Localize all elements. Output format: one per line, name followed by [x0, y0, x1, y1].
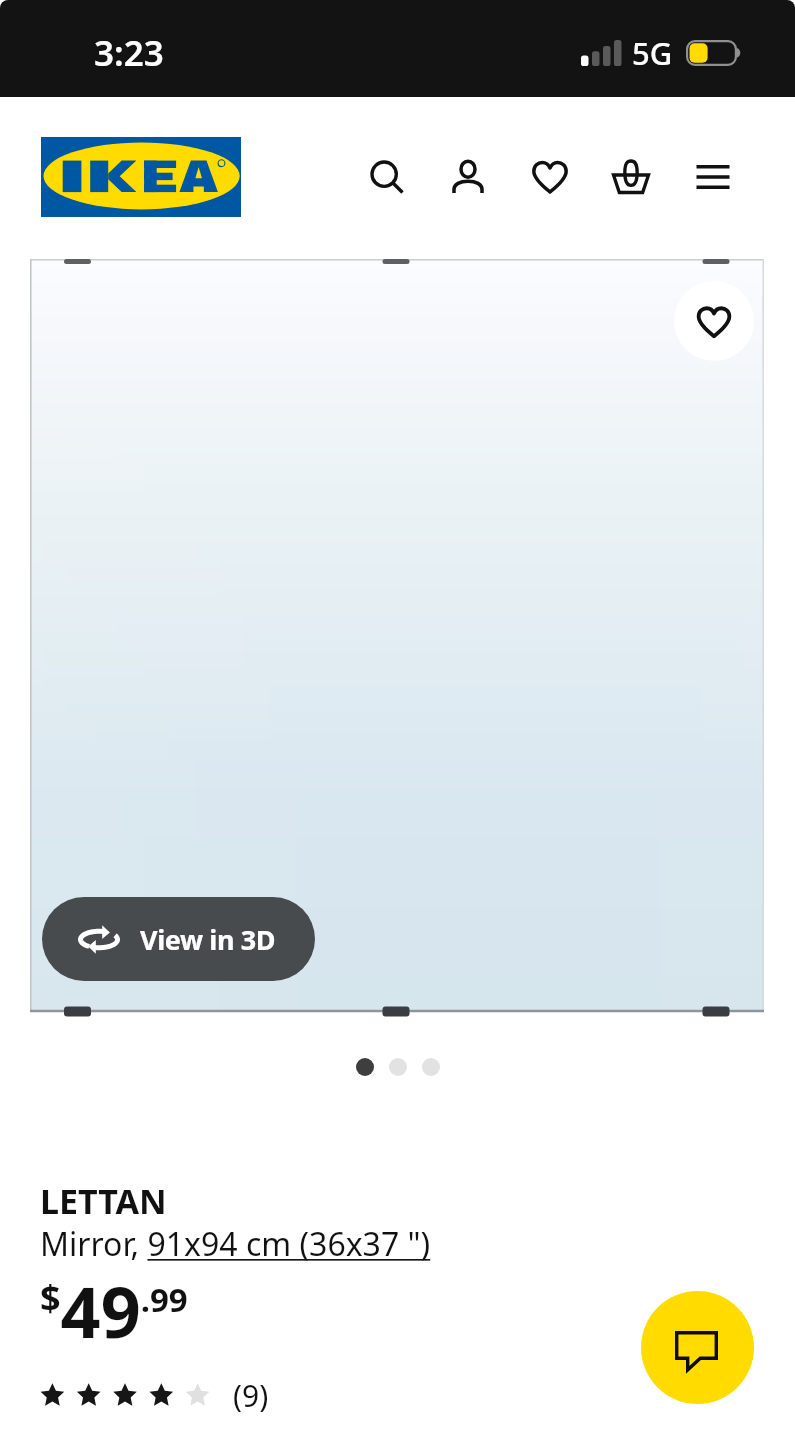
button[interactable]: IKEA home: [41, 137, 241, 217]
staticText: View in 3D: [140, 921, 276, 958]
staticText: $49.99: [40, 1263, 188, 1358]
button[interactable]: Add to favourites: [674, 281, 754, 361]
button[interactable]: View in 3D: [42, 897, 315, 981]
staticText: LETTAN: [40, 1178, 167, 1224]
button[interactable]: Favourites: [522, 149, 578, 205]
button[interactable]: Shopping bag: [603, 149, 659, 205]
button[interactable]: Chat with us: [641, 1291, 754, 1404]
button[interactable]: Account: [440, 149, 496, 205]
staticText: 3:23: [94, 29, 164, 77]
button[interactable]: Search: [359, 149, 415, 205]
button[interactable]: Menu: [685, 149, 741, 205]
staticText: 5G: [632, 32, 673, 74]
staticText: Mirror, 91x94 cm (36x37 "): [40, 1222, 431, 1266]
staticText: (9): [233, 1375, 269, 1416]
